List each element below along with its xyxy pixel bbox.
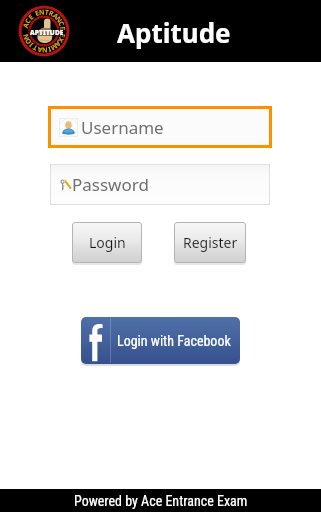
staticText: Password [72, 173, 149, 196]
staticText: Powered by Ace Entrance Exam [74, 493, 248, 509]
staticText: Login with Facebook [117, 333, 231, 349]
button[interactable]: Register [174, 222, 246, 263]
button[interactable]: Login [72, 222, 142, 263]
staticText: Login [89, 233, 126, 252]
staticText: Register [183, 233, 238, 252]
button[interactable]: Username [51, 109, 269, 145]
staticText: Aptitude [117, 15, 231, 50]
other: Ace Entrance Exam logo [19, 6, 69, 56]
button[interactable]: Password [51, 165, 269, 204]
staticText: Username [81, 116, 164, 139]
button[interactable]: Login with Facebook [81, 317, 240, 364]
staticText: APTITUDE [30, 28, 64, 36]
